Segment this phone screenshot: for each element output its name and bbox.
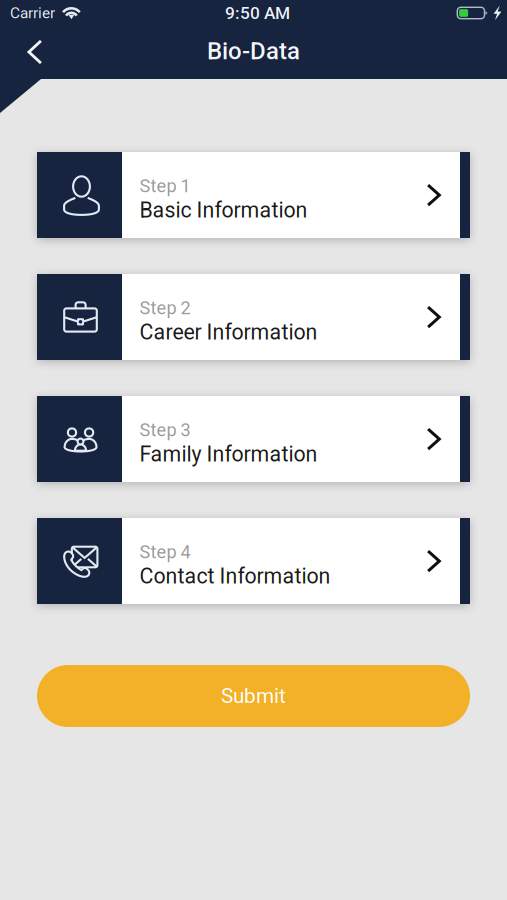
staticText: Step 3	[139, 419, 190, 441]
button[interactable]: Step 2	[37, 274, 470, 360]
button[interactable]: Step 1	[37, 152, 470, 238]
staticText: Basic Information	[139, 198, 307, 223]
button[interactable]: Step 3	[37, 396, 470, 482]
staticText: Carrier	[10, 4, 55, 22]
staticText: Contact Information	[139, 564, 330, 589]
staticText: Submit	[221, 684, 286, 708]
button[interactable]: Step 4	[37, 518, 470, 604]
button[interactable]: Submit	[37, 665, 470, 727]
staticText: 9:50 AM	[225, 3, 290, 23]
staticText: Family Information	[139, 442, 317, 467]
staticText: Step 1	[139, 175, 190, 197]
staticText: Step 2	[139, 297, 190, 319]
staticText: Career Information	[139, 320, 317, 345]
button[interactable]: Back	[13, 28, 57, 72]
staticText: Step 4	[139, 541, 190, 563]
staticText: Bio-Data	[207, 37, 300, 65]
